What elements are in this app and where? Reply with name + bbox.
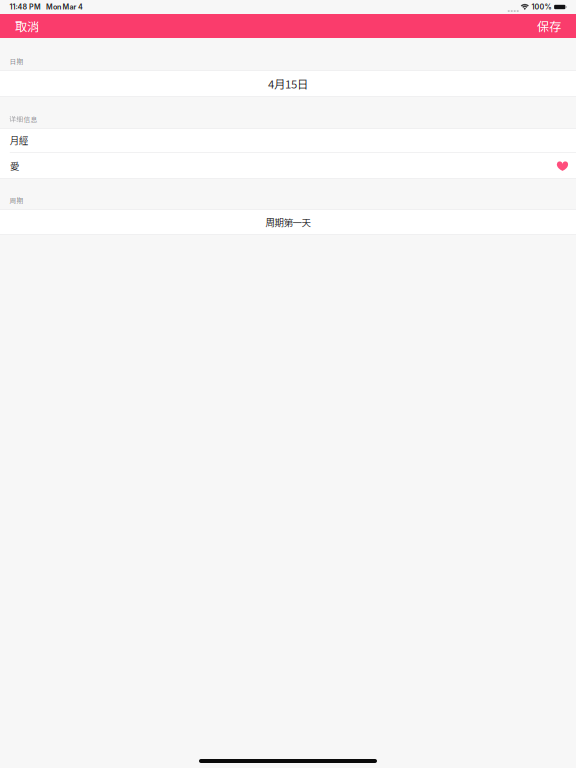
staticText: PM xyxy=(29,3,41,11)
staticText: 取消 xyxy=(15,17,39,35)
staticText: 4月15日 xyxy=(268,75,308,92)
button[interactable]: 4月15日 xyxy=(0,70,576,97)
staticText: Mon xyxy=(46,3,61,11)
staticText: 愛 xyxy=(10,159,19,173)
button[interactable]: 愛 xyxy=(0,153,576,179)
staticText: 4 xyxy=(78,3,83,11)
staticText: 11:48 xyxy=(9,3,27,11)
staticText: 月經 xyxy=(10,133,28,147)
staticText: 详细信息 xyxy=(9,114,37,124)
button[interactable]: 取消 xyxy=(3,14,51,38)
button[interactable]: 保存 xyxy=(525,14,573,38)
staticText: 日期 xyxy=(9,56,23,66)
staticText: 周期第一天 xyxy=(265,215,310,229)
staticText: 100% xyxy=(531,3,551,11)
button[interactable]: 月經 xyxy=(0,128,576,152)
staticText: Mar xyxy=(62,3,76,11)
staticText: 周期 xyxy=(9,195,23,205)
staticText: 保存 xyxy=(537,17,561,35)
button[interactable]: 周期第一天 xyxy=(0,209,576,235)
